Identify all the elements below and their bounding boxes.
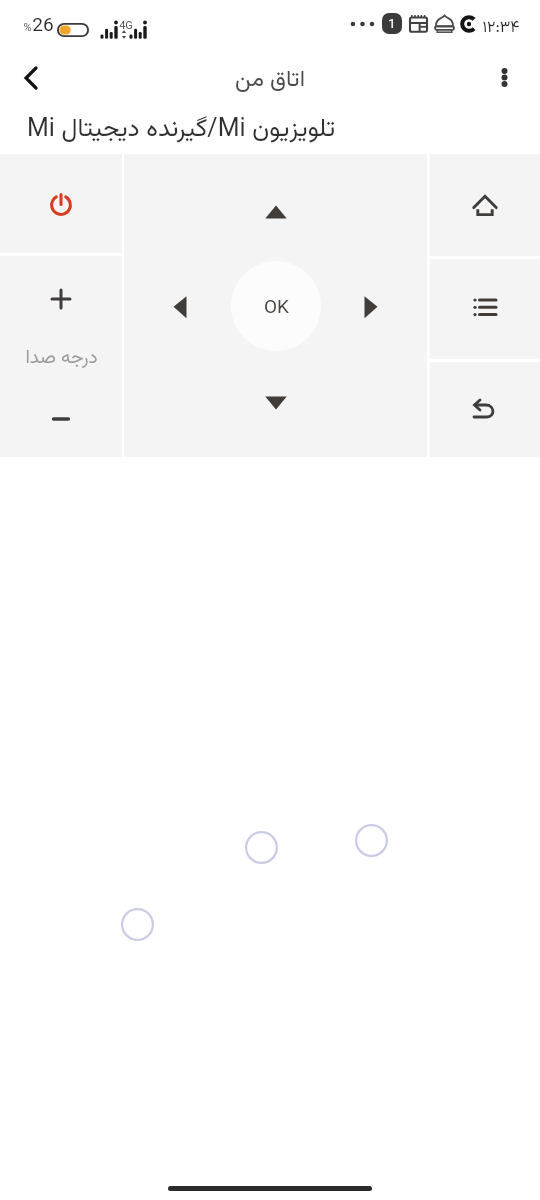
staticText: اتاق من xyxy=(235,62,305,98)
button[interactable]: Home xyxy=(430,154,540,256)
staticText: % xyxy=(23,21,32,34)
staticText: 26 xyxy=(32,13,54,35)
button[interactable]: Volume down xyxy=(0,381,122,457)
button[interactable]: More options xyxy=(472,55,536,105)
button[interactable]: Left xyxy=(153,279,207,333)
button[interactable]: Right xyxy=(344,279,398,333)
button[interactable]: Volume up xyxy=(0,256,122,342)
button[interactable]: Power xyxy=(0,154,122,253)
button[interactable]: Up xyxy=(249,185,303,239)
button[interactable]: Down xyxy=(249,375,303,429)
staticText: 4G xyxy=(119,19,133,32)
button[interactable]: Back xyxy=(0,55,62,105)
button[interactable]: OK xyxy=(231,261,321,351)
button[interactable]: Menu xyxy=(430,259,540,359)
staticText: 1 xyxy=(388,16,396,31)
button[interactable]: Back xyxy=(430,362,540,457)
staticText: درجه صدا xyxy=(25,344,98,374)
staticText: OK xyxy=(264,295,289,317)
staticText: ۱۲:۳۴ xyxy=(482,16,520,41)
staticText: تلویزیون Mi/گیرنده دیجیتال Mi xyxy=(27,110,540,149)
